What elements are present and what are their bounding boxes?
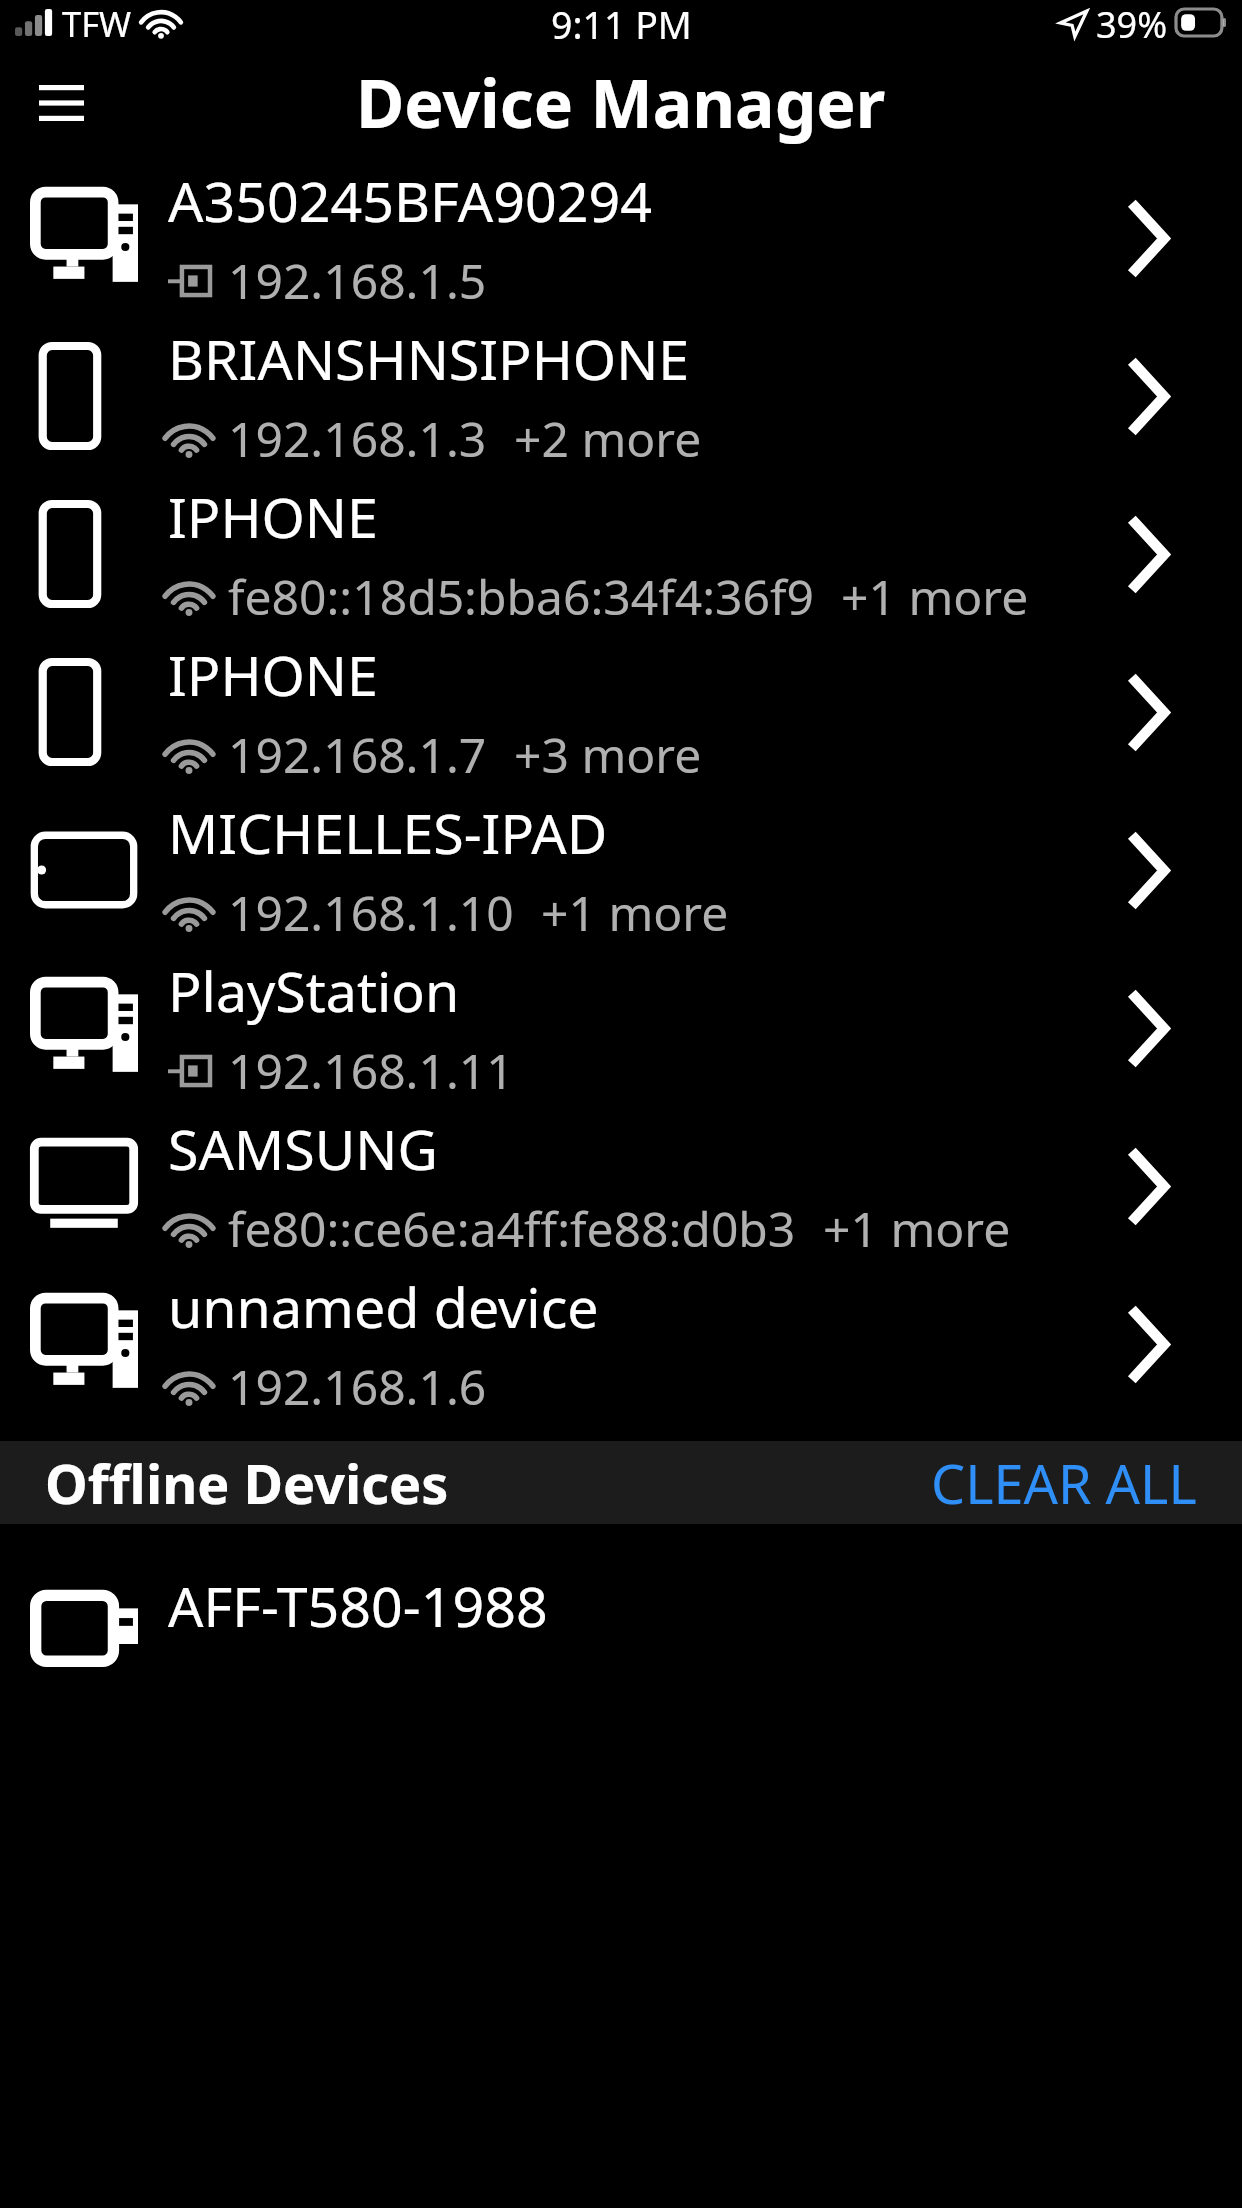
staticText: +1 more	[841, 564, 1029, 629]
button[interactable]: IPHONE	[0, 475, 1242, 633]
staticText: MICHELLES-IPAD	[168, 795, 608, 871]
staticText: fe80::ce6e:a4ff:fe88:d0b3	[228, 1196, 796, 1261]
staticText: SAMSUNG	[168, 1111, 438, 1187]
button[interactable]: unnamed device	[0, 1265, 1242, 1423]
staticText: 192.168.1.3	[228, 406, 487, 471]
staticText: unnamed device	[168, 1269, 599, 1345]
button[interactable]: Menu	[27, 68, 96, 137]
button[interactable]: MICHELLES-IPAD	[0, 791, 1242, 949]
staticText: 9:11 PM	[551, 0, 692, 44]
staticText: 192.168.1.6	[228, 1354, 487, 1419]
staticText: 39%	[1096, 0, 1168, 45]
staticText: 192.168.1.5	[228, 248, 487, 313]
staticText: +3 more	[514, 722, 702, 787]
staticText: BRIANSHNSIPHONE	[168, 321, 690, 397]
button[interactable]: AFF-T580-1988	[0, 1524, 1242, 1644]
staticText: TFW	[62, 0, 132, 45]
staticText: IPHONE	[168, 637, 378, 713]
staticText: +1 more	[541, 880, 729, 945]
button[interactable]: BRIANSHNSIPHONE	[0, 317, 1242, 475]
staticText: 192.168.1.11	[228, 1038, 514, 1103]
staticText: Offline Devices	[45, 1446, 449, 1520]
staticText: AFF-T580-1988	[168, 1568, 548, 1644]
staticText: PlayStation	[168, 953, 460, 1029]
staticText: +1 more	[823, 1196, 1011, 1261]
button[interactable]: IPHONE	[0, 633, 1242, 791]
button[interactable]: A350245BFA90294	[0, 159, 1242, 317]
staticText: 192.168.1.7	[228, 722, 487, 787]
staticText: 192.168.1.10	[228, 880, 514, 945]
button[interactable]: PlayStation	[0, 949, 1242, 1107]
staticText: CLEAR ALL	[931, 1446, 1197, 1520]
button[interactable]: CLEAR ALL	[931, 1446, 1197, 1520]
staticText: Device Manager	[356, 57, 886, 147]
staticText: fe80::18d5:bba6:34f4:36f9	[228, 564, 814, 629]
staticText: A350245BFA90294	[168, 163, 652, 239]
button[interactable]: SAMSUNG	[0, 1107, 1242, 1265]
staticText: IPHONE	[168, 479, 378, 555]
staticText: +2 more	[514, 406, 702, 471]
